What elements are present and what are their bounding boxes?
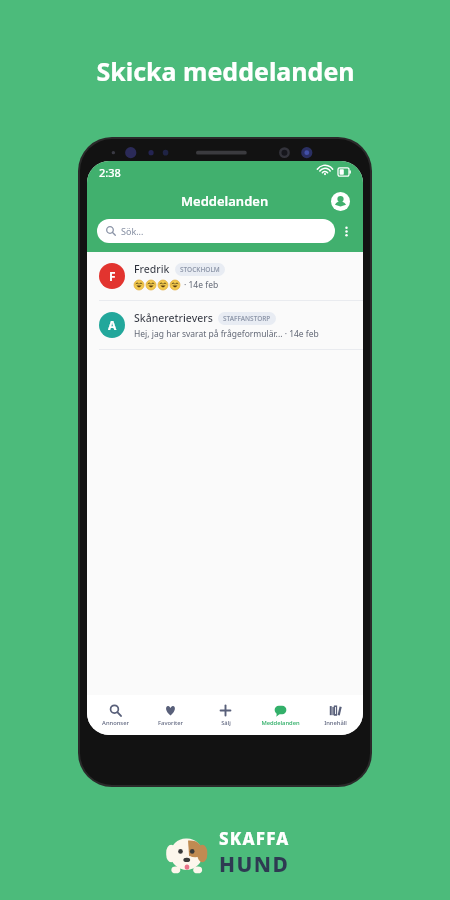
button[interactable]: Annonser (87, 695, 143, 735)
staticText: · 14e feb (184, 279, 219, 291)
staticText: Meddelanden (181, 192, 269, 210)
button[interactable]: Sök... (97, 219, 335, 243)
staticText: Fredrik (134, 262, 170, 276)
button[interactable]: Account (327, 188, 353, 214)
staticText: A (108, 317, 117, 333)
staticText: F (109, 268, 116, 284)
button[interactable]: A (87, 301, 363, 349)
staticText: Hej, jag har svarat på frågeformulär... … (134, 328, 319, 340)
button[interactable]: Favoriter (143, 695, 198, 735)
staticText: Sök... (121, 225, 144, 237)
staticText: Meddelanden (261, 719, 300, 727)
staticText: Annonser (102, 719, 129, 727)
staticText: HUND (219, 850, 290, 879)
staticText: 2:38 (99, 165, 121, 180)
button[interactable]: F (87, 252, 363, 300)
staticText: Skåneretrievers (134, 311, 213, 325)
button[interactable]: Meddelanden (253, 695, 308, 735)
staticText: STAFFANSTORP (223, 314, 271, 323)
button[interactable]: Sälj (198, 695, 253, 735)
staticText: Innehåll (324, 719, 347, 727)
button[interactable]: More options (335, 220, 357, 242)
staticText: Favoriter (158, 719, 183, 727)
staticText: Skicka meddelanden (96, 54, 355, 88)
staticText: Sälj (221, 719, 231, 727)
button[interactable]: Innehåll (308, 695, 363, 735)
staticText: STOCKHOLM (180, 265, 220, 274)
staticText: SKAFFA (219, 827, 290, 850)
